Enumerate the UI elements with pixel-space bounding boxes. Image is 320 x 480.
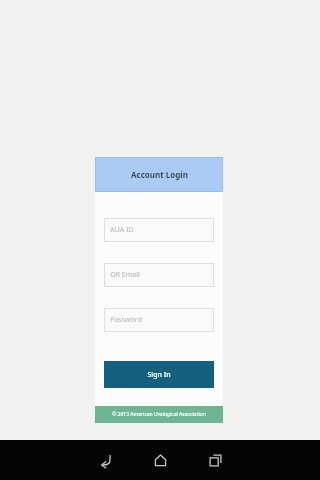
button[interactable]: OR Email bbox=[104, 263, 214, 287]
button[interactable]: Home bbox=[134, 440, 186, 480]
staticText: OR Email bbox=[110, 270, 140, 280]
button[interactable]: Recent apps bbox=[189, 440, 241, 480]
button[interactable]: AUA ID bbox=[104, 218, 214, 242]
button[interactable]: Password bbox=[104, 308, 214, 332]
staticText: Sign In bbox=[147, 370, 171, 380]
staticText: © 2013 American Urological Association bbox=[112, 411, 206, 418]
button[interactable]: Sign In bbox=[104, 361, 214, 388]
staticText: AUA ID bbox=[110, 225, 134, 235]
staticText: Account Login bbox=[131, 169, 188, 180]
button[interactable]: Account Login bbox=[95, 157, 223, 192]
button[interactable]: Back bbox=[79, 440, 131, 480]
staticText: Password bbox=[110, 315, 142, 325]
